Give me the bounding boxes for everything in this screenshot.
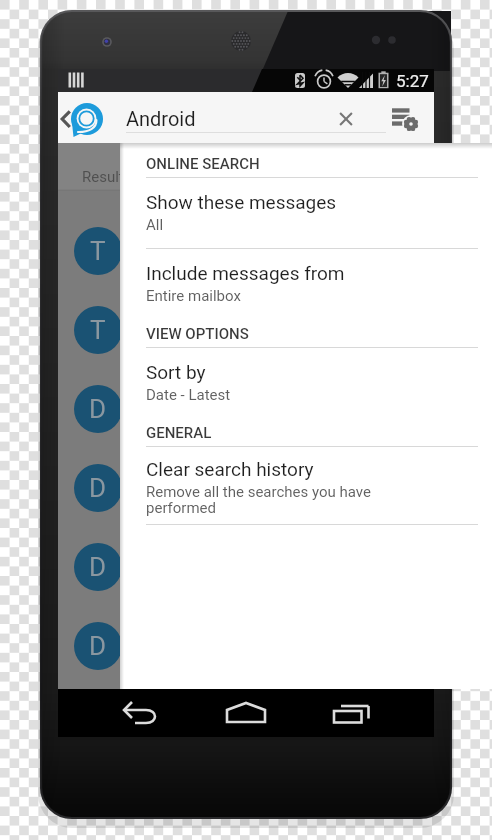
- button[interactable]: Search options: [384, 92, 434, 143]
- button[interactable]: Back: [58, 92, 108, 143]
- staticText: ONLINE SEARCH: [146, 155, 260, 173]
- button[interactable]: Clear search: [326, 92, 366, 143]
- button[interactable]: Include messages from: [120, 249, 492, 319]
- staticText: VIEW OPTIONS: [146, 325, 249, 343]
- button[interactable]: Sort by: [120, 348, 492, 418]
- staticText: Clear search history: [146, 458, 314, 480]
- button[interactable]: Home: [210, 689, 282, 737]
- staticText: 5:27: [396, 71, 429, 91]
- staticText: Remove all the searches you have perform…: [146, 483, 438, 517]
- staticText: T: [90, 315, 106, 345]
- staticText: Include messages from: [146, 262, 345, 284]
- staticText: Entire mailbox: [146, 287, 241, 305]
- button[interactable]: Recent apps: [316, 689, 388, 737]
- staticText: Android: [126, 107, 196, 130]
- staticText: T: [90, 236, 106, 266]
- staticText: Sort by: [146, 361, 206, 383]
- button[interactable]: Back: [105, 689, 177, 737]
- staticText: All: [146, 216, 164, 234]
- staticText: GENERAL: [146, 424, 212, 442]
- staticText: D: [89, 631, 107, 661]
- staticText: Date - Latest: [146, 386, 231, 404]
- staticText: Results: [82, 168, 132, 186]
- button[interactable]: Clear search history: [120, 447, 492, 524]
- staticText: D: [89, 552, 107, 582]
- button[interactable]: Show these messages: [120, 178, 492, 248]
- staticText: D: [89, 473, 107, 503]
- staticText: D: [89, 394, 107, 424]
- staticText: Show these messages: [146, 191, 337, 213]
